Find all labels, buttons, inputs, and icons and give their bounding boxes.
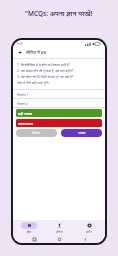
button[interactable]: गलत जवाब <box>16 119 102 127</box>
staticText: सीरीज़ <box>56 230 63 234</box>
staticText: विकल्प 2 <box>17 101 29 105</box>
staticText: विकल्प 1 <box>17 92 29 96</box>
staticText: 1. निम्नलिखित में से कौन सा विकल्प सही ह… <box>17 62 70 66</box>
button[interactable]: पिछला <box>16 129 57 137</box>
button[interactable]: विकल्प 2 <box>13 99 105 107</box>
button[interactable]: Recents <box>29 235 39 243</box>
staticText: गलत जवाब <box>18 121 33 126</box>
button[interactable]: सही जवाब <box>16 109 102 117</box>
button[interactable]: Back <box>80 235 90 243</box>
staticText: होम <box>27 230 31 234</box>
button[interactable]: सीरीज़ <box>45 221 73 235</box>
staticText: 3. एक कोण जो 90 डिग्री से कम हो, वह क्या… <box>17 74 74 78</box>
button[interactable]: सेटिंग <box>75 221 103 235</box>
button[interactable]: विकल्प 1 <box>13 90 105 98</box>
button[interactable]: Home <box>54 235 64 243</box>
button[interactable]: Back <box>13 47 105 58</box>
staticText: अगला <box>78 131 86 135</box>
button[interactable]: होम <box>15 221 43 235</box>
staticText: सही जवाब <box>18 111 32 116</box>
staticText: 9:41 <box>17 42 24 46</box>
staticText: 2. एक संख्या तीन की गुणांक है, उसे क्या … <box>17 68 74 72</box>
staticText: सेटिंग <box>86 230 92 234</box>
button[interactable]: Back <box>17 49 24 56</box>
button[interactable]: अगला <box>61 129 102 137</box>
staticText: "MCQs: अपना ज्ञान परखें! <box>25 9 93 18</box>
staticText: पिछला <box>32 131 41 135</box>
staticText: उत्तर में नीचे सही उत्तर चुनें। <box>17 80 49 84</box>
staticText: सीरीज़ में प्रश्न <box>26 50 47 56</box>
